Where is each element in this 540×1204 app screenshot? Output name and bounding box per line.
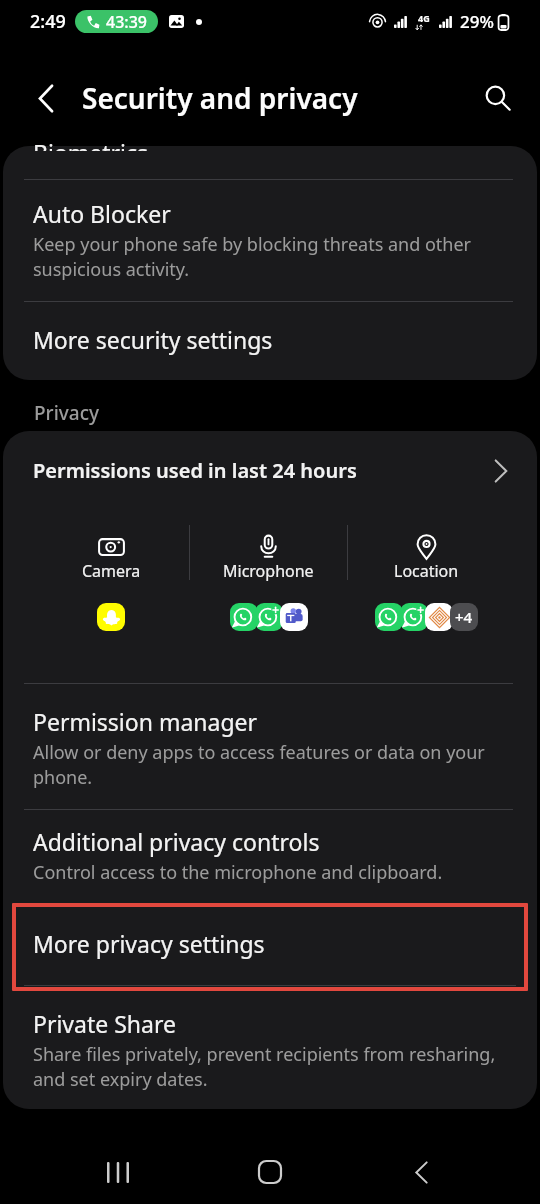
staticText: Security and privacy (82, 79, 358, 117)
staticText: Microphone (223, 560, 314, 582)
staticText: Permission manager (33, 706, 258, 737)
staticText: Keep your phone safe by blocking threats… (33, 232, 507, 281)
button[interactable]: Auto Blocker (3, 180, 537, 301)
button[interactable]: Search (476, 76, 520, 120)
staticText: Share files privately, prevent recipient… (33, 1042, 507, 1091)
staticText: Additional privacy controls (33, 826, 320, 857)
button[interactable]: Home (242, 1144, 298, 1200)
staticText: Private Share (33, 1008, 176, 1039)
staticText: 43:39 (106, 11, 147, 33)
staticText: Camera (82, 560, 141, 582)
staticText: Location (394, 560, 459, 582)
button[interactable]: More privacy settings (12, 903, 528, 985)
staticText: 2:49 (30, 9, 66, 34)
button[interactable]: Additional privacy controls (3, 810, 537, 903)
button[interactable]: Private Share (3, 991, 537, 1109)
staticText: Biometrics (33, 137, 149, 151)
staticText: +4 (455, 607, 473, 627)
staticText: Permissions used in last 24 hours (33, 457, 357, 484)
staticText: Allow or deny apps to access features or… (33, 740, 507, 789)
staticText: Auto Blocker (33, 198, 171, 229)
staticText: 29% (460, 10, 494, 33)
button[interactable]: Back (24, 76, 68, 120)
button[interactable]: More security settings (3, 302, 537, 380)
staticText: More security settings (33, 324, 273, 355)
button[interactable]: Permissions used in last 24 hours (3, 431, 537, 504)
button[interactable]: Permission manager (3, 684, 537, 809)
staticText: Privacy (34, 400, 99, 426)
button[interactable]: Recent apps (90, 1144, 146, 1200)
staticText: Control access to the microphone and cli… (33, 860, 443, 885)
staticText: 4G (418, 12, 430, 24)
button[interactable]: Back (393, 1144, 449, 1200)
staticText: More privacy settings (33, 928, 265, 959)
